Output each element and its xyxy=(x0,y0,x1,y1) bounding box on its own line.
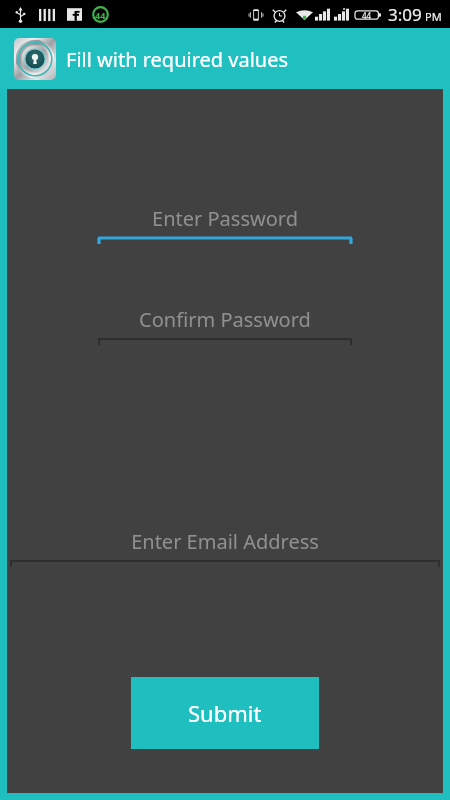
staticText: Submit xyxy=(188,698,262,728)
button[interactable]: Enter Email Address xyxy=(10,528,440,567)
button[interactable]: Confirm Password xyxy=(98,306,352,345)
staticText: PM xyxy=(425,9,442,24)
staticText: Fill with required values xyxy=(66,46,289,73)
staticText: 44 xyxy=(95,9,106,21)
staticText: Enter Email Address xyxy=(10,528,440,555)
staticText: 3:09 xyxy=(388,3,422,26)
other: App icon xyxy=(14,38,56,80)
button[interactable]: Enter Password xyxy=(98,205,352,244)
staticText: 44 xyxy=(362,10,372,21)
button[interactable]: Submit xyxy=(131,677,319,749)
staticText: Enter Password xyxy=(98,205,352,232)
staticText: Confirm Password xyxy=(98,306,352,333)
